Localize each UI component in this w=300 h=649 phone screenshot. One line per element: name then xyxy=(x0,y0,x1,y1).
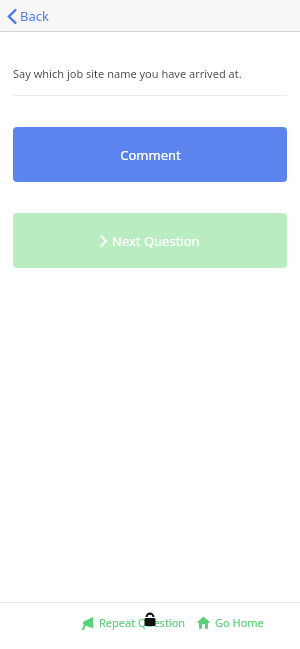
staticText: Go Home xyxy=(215,615,264,630)
button[interactable]: Repeat Question xyxy=(78,613,188,632)
staticText: Comment xyxy=(120,146,181,164)
staticText: Repeat Question xyxy=(99,615,186,630)
button[interactable]: Back xyxy=(6,4,51,28)
staticText: Next Question xyxy=(112,232,200,250)
button[interactable]: Go Home xyxy=(194,613,266,632)
staticText: Back xyxy=(20,7,49,25)
staticText: Say which job site name you have arrived… xyxy=(13,66,242,81)
button[interactable]: Next Question xyxy=(13,213,287,268)
other: Locked xyxy=(142,612,158,628)
button[interactable]: Comment xyxy=(13,127,287,182)
